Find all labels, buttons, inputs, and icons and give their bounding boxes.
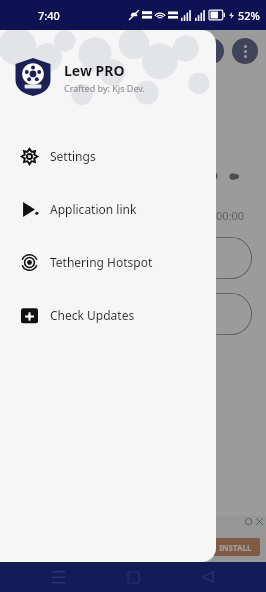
- button[interactable]: More options: [232, 38, 258, 64]
- button[interactable]: Check Updates: [0, 297, 216, 333]
- staticText: INSTALL: [219, 542, 252, 553]
- button[interactable]: Settings: [0, 138, 216, 174]
- staticText: Application link: [50, 201, 137, 217]
- button[interactable]: [40, 237, 252, 279]
- staticText: Settings: [50, 148, 96, 164]
- staticText: 7:40: [38, 8, 60, 23]
- button[interactable]: Refresh: [198, 38, 224, 64]
- staticText: 00:00:00: [0, 208, 244, 223]
- button[interactable]: Home: [116, 562, 150, 592]
- button[interactable]: INSTALL: [210, 538, 260, 556]
- button[interactable]: [40, 293, 252, 335]
- staticText: Check Updates: [50, 307, 135, 323]
- button[interactable]: Recent apps: [41, 562, 75, 592]
- button[interactable]: Application link: [0, 191, 216, 227]
- staticText: Crafted by: Kjs Dev.: [64, 82, 145, 94]
- staticText: Lew PRO: [64, 61, 125, 80]
- staticText: Tethering Hotspot: [50, 254, 153, 270]
- staticText: 52%: [238, 8, 260, 23]
- button[interactable]: Back: [191, 562, 225, 592]
- button[interactable]: Tethering Hotspot: [0, 244, 216, 280]
